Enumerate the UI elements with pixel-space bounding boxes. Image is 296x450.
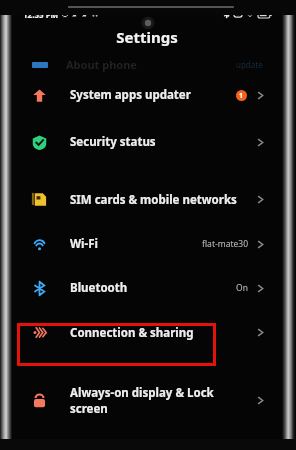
staticText: 1 xyxy=(239,91,244,101)
button[interactable]: Connection & sharing xyxy=(11,310,283,355)
staticText: System apps updater xyxy=(70,87,236,103)
staticText: On xyxy=(236,282,248,294)
staticText: Bluetooth xyxy=(70,280,236,296)
button[interactable]: System apps updater xyxy=(11,72,283,118)
button[interactable]: Security status xyxy=(11,118,283,166)
staticText: Security status xyxy=(70,134,256,150)
staticText: Wi-Fi xyxy=(70,236,202,252)
staticText: About phone xyxy=(66,57,137,72)
button[interactable]: About phone xyxy=(11,57,283,72)
button[interactable]: Bluetooth xyxy=(11,266,283,310)
staticText: Connection & sharing xyxy=(70,325,256,341)
button[interactable]: Wi-Fi xyxy=(11,222,283,266)
staticText: flat-mate30 xyxy=(202,238,248,250)
button[interactable]: Always-on display & Lock screen xyxy=(11,376,283,424)
staticText: Always-on display & Lock screen xyxy=(70,385,256,416)
staticText: 12:35 PM xyxy=(23,9,59,20)
staticText: SIM cards & mobile networks xyxy=(70,192,256,208)
button[interactable]: SIM cards & mobile networks xyxy=(11,177,283,222)
staticText: update xyxy=(236,59,263,70)
staticText: Settings xyxy=(11,27,283,47)
